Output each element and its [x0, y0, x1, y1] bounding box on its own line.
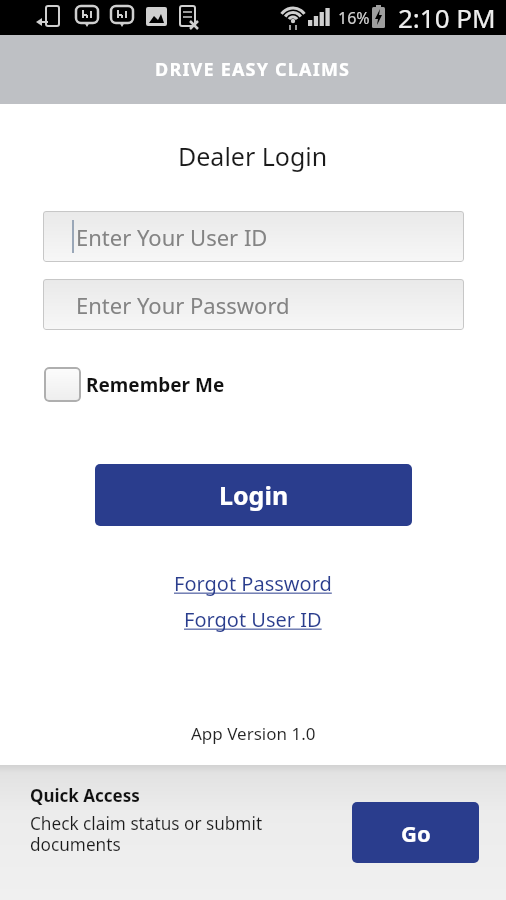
staticText: Dealer Login [178, 139, 328, 173]
button[interactable] [44, 367, 81, 402]
button[interactable]: Forgot Password [174, 570, 332, 597]
staticText: DRIVE EASY CLAIMS [155, 57, 351, 82]
staticText: 2:10 PM [398, 0, 496, 35]
button[interactable]: Login [95, 464, 412, 526]
staticText: Enter Your Password [76, 290, 290, 320]
staticText: Quick Access [30, 784, 140, 807]
button[interactable]: Forgot User ID [184, 606, 322, 633]
button[interactable]: Enter Your User ID [43, 211, 464, 262]
button[interactable]: Go [352, 802, 479, 863]
staticText: Enter Your User ID [76, 222, 268, 252]
staticText: Check claim status or submit documents [30, 812, 263, 857]
button[interactable]: Enter Your Password [43, 279, 464, 330]
staticText: Login [219, 478, 289, 512]
staticText: 16% [338, 7, 370, 29]
staticText: Go [401, 818, 431, 848]
staticText: Remember Me [86, 372, 225, 398]
staticText: App Version 1.0 [191, 722, 316, 745]
